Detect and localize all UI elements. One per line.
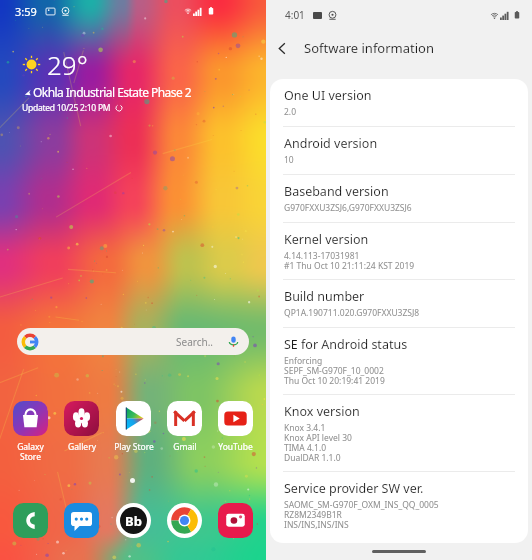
button[interactable]: Back xyxy=(266,30,298,66)
staticText: 4.14.113-17031981 #1 Thu Oct 10 21:11:24… xyxy=(284,250,415,271)
button[interactable]: Service provider SW ver. xyxy=(270,471,528,538)
staticText: 10 xyxy=(284,154,294,166)
button[interactable]: SE for Android status xyxy=(270,327,528,394)
staticText: Galaxy Store xyxy=(17,441,44,462)
staticText: 2.0 xyxy=(284,106,297,118)
button[interactable]: Build number xyxy=(270,279,528,327)
staticText: Enforcing SEPF_SM-G970F_10_0002 Thu Oct … xyxy=(284,355,385,386)
staticText: Play Store xyxy=(114,441,154,453)
button[interactable]: Phone xyxy=(10,503,51,538)
button[interactable]: Search.. xyxy=(17,328,249,355)
staticText: G970FXXU3ZSJ6,G970FXXU3ZSJ6 xyxy=(284,202,412,214)
staticText: Baseband version xyxy=(284,183,389,200)
staticText: SAOMC_SM-G970F_OXM_INS_QQ_0005 RZ8M2349B… xyxy=(284,499,439,530)
staticText: 4:01 xyxy=(285,8,305,22)
staticText: Android version xyxy=(284,135,378,152)
staticText: YouTube xyxy=(218,441,253,453)
staticText: Gmail xyxy=(173,441,197,453)
button[interactable]: Play Store xyxy=(113,401,154,453)
button[interactable]: Kernel version xyxy=(270,222,528,279)
staticText: QP1A.190711.020.G970FXXU3ZSJ8 xyxy=(284,307,420,319)
button[interactable]: YouTube xyxy=(215,401,256,453)
staticText: Knox 3.4.1 Knox API level 30 TIMA 4.1.0 … xyxy=(284,422,352,463)
staticText: 29° xyxy=(47,47,88,82)
staticText: 3:59 xyxy=(15,4,37,19)
staticText: Knox version xyxy=(284,403,360,420)
button[interactable]: Knox version xyxy=(270,394,528,471)
staticText: Software information xyxy=(304,39,434,57)
button[interactable]: 29° xyxy=(0,47,266,114)
staticText: Updated 10/25 2:10 PM xyxy=(22,102,111,114)
button[interactable]: Chrome xyxy=(164,503,205,538)
staticText: Service provider SW ver. xyxy=(284,480,424,497)
staticText: Bb xyxy=(125,512,142,530)
staticText: Okhla Industrial Estate Phase 2 xyxy=(33,84,192,100)
button[interactable]: One UI version xyxy=(270,79,528,126)
staticText: One UI version xyxy=(284,87,372,104)
button[interactable]: Camera xyxy=(215,503,256,538)
button[interactable]: Bixby xyxy=(113,503,154,538)
button[interactable]: Galaxy Store xyxy=(10,401,51,462)
staticText: Build number xyxy=(284,288,365,305)
staticText: Search.. xyxy=(176,335,214,349)
staticText: Gallery xyxy=(68,441,96,453)
staticText: Kernel version xyxy=(284,231,369,248)
button[interactable]: Gmail xyxy=(164,401,205,453)
button[interactable]: Android version xyxy=(270,126,528,174)
staticText: SE for Android status xyxy=(284,336,408,353)
button[interactable]: Gallery xyxy=(61,401,102,453)
button[interactable]: Messages xyxy=(61,503,102,538)
button[interactable]: Baseband version xyxy=(270,174,528,222)
